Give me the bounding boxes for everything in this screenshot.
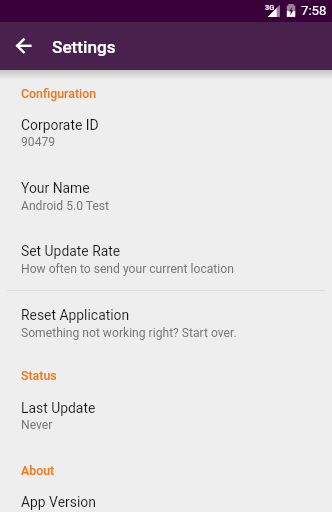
staticText: Your Name [21, 180, 90, 196]
staticText: About [21, 464, 55, 478]
staticText: App Version [21, 494, 96, 510]
button[interactable]: Back [8, 30, 40, 62]
button[interactable]: Reset Application [0, 291, 332, 354]
staticText: How often to send your current location [21, 262, 234, 276]
staticText: Something not working right? Start over. [21, 326, 237, 340]
staticText: Status [21, 369, 57, 383]
staticText: Configuration [21, 87, 97, 101]
button[interactable]: Corporate ID [0, 102, 332, 165]
button[interactable]: Your Name [0, 165, 332, 228]
staticText: Android 5.0 Test [21, 199, 110, 213]
staticText: Corporate ID [21, 117, 99, 133]
button[interactable]: Last Update [0, 385, 332, 448]
staticText: 90479 [21, 135, 56, 149]
staticText: Settings [52, 37, 116, 57]
staticText: 7:58 [301, 3, 327, 18]
staticText: Reset Application [21, 307, 130, 323]
staticText: Never [21, 418, 53, 432]
button[interactable]: App Version [0, 479, 332, 512]
staticText: 3G [265, 3, 275, 12]
staticText: Last Update [21, 400, 96, 416]
staticText: Set Update Rate [21, 243, 121, 259]
button[interactable]: Set Update Rate [0, 228, 332, 290]
